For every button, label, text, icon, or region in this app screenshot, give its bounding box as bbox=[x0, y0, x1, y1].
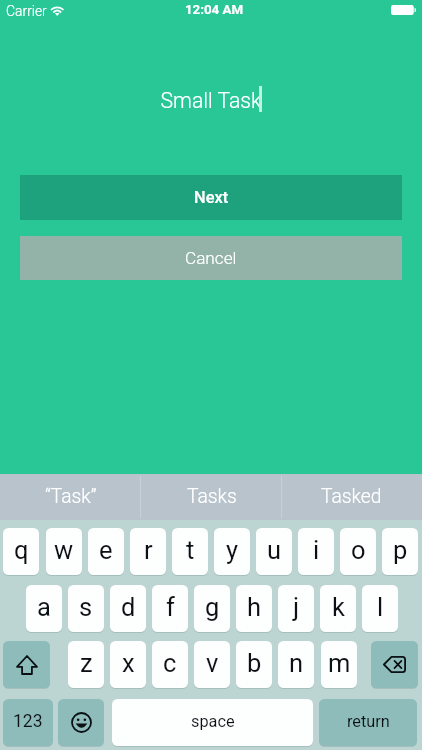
button[interactable]: x bbox=[110, 641, 146, 688]
staticText: return bbox=[347, 712, 390, 731]
button[interactable]: Backspace bbox=[371, 641, 418, 688]
button[interactable]: k bbox=[320, 585, 356, 632]
staticText: Small Task bbox=[71, 88, 351, 113]
staticText: space bbox=[191, 712, 235, 731]
other: Battery full bbox=[391, 5, 416, 15]
staticText: y bbox=[226, 535, 239, 565]
staticText: i bbox=[313, 535, 320, 565]
staticText: u bbox=[267, 535, 282, 565]
button[interactable]: n bbox=[278, 641, 314, 688]
button[interactable]: return bbox=[319, 699, 417, 746]
button[interactable]: p bbox=[382, 528, 418, 575]
staticText: e bbox=[99, 535, 113, 565]
staticText: “Task” bbox=[45, 485, 97, 508]
button[interactable]: Carrier bbox=[6, 3, 47, 19]
staticText: t bbox=[186, 535, 195, 565]
staticText: a bbox=[37, 592, 51, 622]
staticText: g bbox=[205, 592, 220, 622]
staticText: s bbox=[79, 592, 93, 622]
button[interactable]: Next bbox=[20, 175, 402, 220]
staticText: o bbox=[351, 535, 366, 565]
button[interactable]: q bbox=[3, 528, 39, 575]
button[interactable]: e bbox=[88, 528, 124, 575]
button[interactable]: f bbox=[152, 585, 188, 632]
button[interactable]: v bbox=[194, 641, 230, 688]
button[interactable]: i bbox=[298, 528, 334, 575]
button[interactable]: s bbox=[68, 585, 104, 632]
button[interactable]: Shift bbox=[3, 641, 50, 688]
staticText: k bbox=[332, 592, 345, 622]
staticText: b bbox=[247, 648, 262, 678]
staticText: Tasked bbox=[321, 485, 382, 508]
staticText: v bbox=[206, 648, 219, 678]
staticText: r bbox=[144, 535, 153, 565]
button[interactable]: Tasks bbox=[141, 474, 282, 520]
staticText: c bbox=[163, 648, 177, 678]
staticText: Next bbox=[194, 188, 229, 207]
button[interactable]: m bbox=[321, 641, 357, 688]
button[interactable]: r bbox=[130, 528, 166, 575]
staticText: w bbox=[54, 535, 74, 565]
button[interactable]: u bbox=[256, 528, 292, 575]
button[interactable]: t bbox=[172, 528, 208, 575]
other: Wi-Fi bbox=[48, 3, 66, 19]
button[interactable]: l bbox=[362, 585, 398, 632]
button[interactable]: g bbox=[194, 585, 230, 632]
staticText: m bbox=[328, 648, 351, 678]
button[interactable]: Cancel bbox=[20, 236, 402, 280]
button[interactable]: o bbox=[340, 528, 376, 575]
button[interactable]: a bbox=[26, 585, 62, 632]
staticText: l bbox=[377, 592, 384, 622]
button[interactable]: Emoji keyboard bbox=[58, 699, 104, 746]
button[interactable]: y bbox=[214, 528, 250, 575]
staticText: h bbox=[247, 592, 262, 622]
staticText: j bbox=[293, 592, 300, 622]
staticText: Cancel bbox=[185, 248, 237, 268]
button[interactable]: w bbox=[46, 528, 82, 575]
button[interactable]: space bbox=[112, 699, 313, 746]
staticText: p bbox=[393, 535, 408, 565]
staticText: f bbox=[166, 592, 175, 622]
staticText: Tasks bbox=[187, 485, 237, 508]
button[interactable]: c bbox=[152, 641, 188, 688]
staticText: z bbox=[80, 648, 93, 678]
staticText: 123 bbox=[13, 711, 43, 732]
button[interactable]: Tasked bbox=[281, 474, 422, 520]
button[interactable]: 123 bbox=[3, 699, 53, 746]
button[interactable]: b bbox=[236, 641, 272, 688]
button[interactable]: d bbox=[110, 585, 146, 632]
staticText: x bbox=[122, 648, 135, 678]
staticText: n bbox=[289, 648, 304, 678]
staticText: q bbox=[14, 535, 29, 565]
staticText: d bbox=[121, 592, 136, 622]
button[interactable]: z bbox=[68, 641, 104, 688]
button[interactable]: h bbox=[236, 585, 272, 632]
button[interactable]: j bbox=[278, 585, 314, 632]
staticText: 12:04 AM bbox=[74, 2, 354, 18]
button[interactable]: “Task” bbox=[0, 474, 141, 520]
button[interactable]: Small Task bbox=[0, 80, 422, 120]
